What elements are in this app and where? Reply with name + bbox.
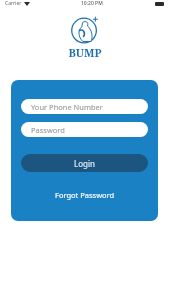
button[interactable]: Forgot Password: [51, 188, 119, 202]
staticText: Forgot Password: [55, 190, 115, 200]
staticText: 10:20 PM: [81, 0, 103, 7]
button[interactable]: Login: [21, 154, 148, 172]
other: BUMP logo: [69, 16, 101, 44]
button[interactable]: Password: [21, 122, 148, 137]
staticText: BUMP: [68, 45, 102, 60]
staticText: Password: [31, 125, 65, 135]
staticText: Login: [74, 158, 95, 169]
staticText: Your Phone Number: [31, 102, 103, 112]
staticText: Carrier: [5, 0, 22, 7]
button[interactable]: Your Phone Number: [21, 99, 148, 114]
